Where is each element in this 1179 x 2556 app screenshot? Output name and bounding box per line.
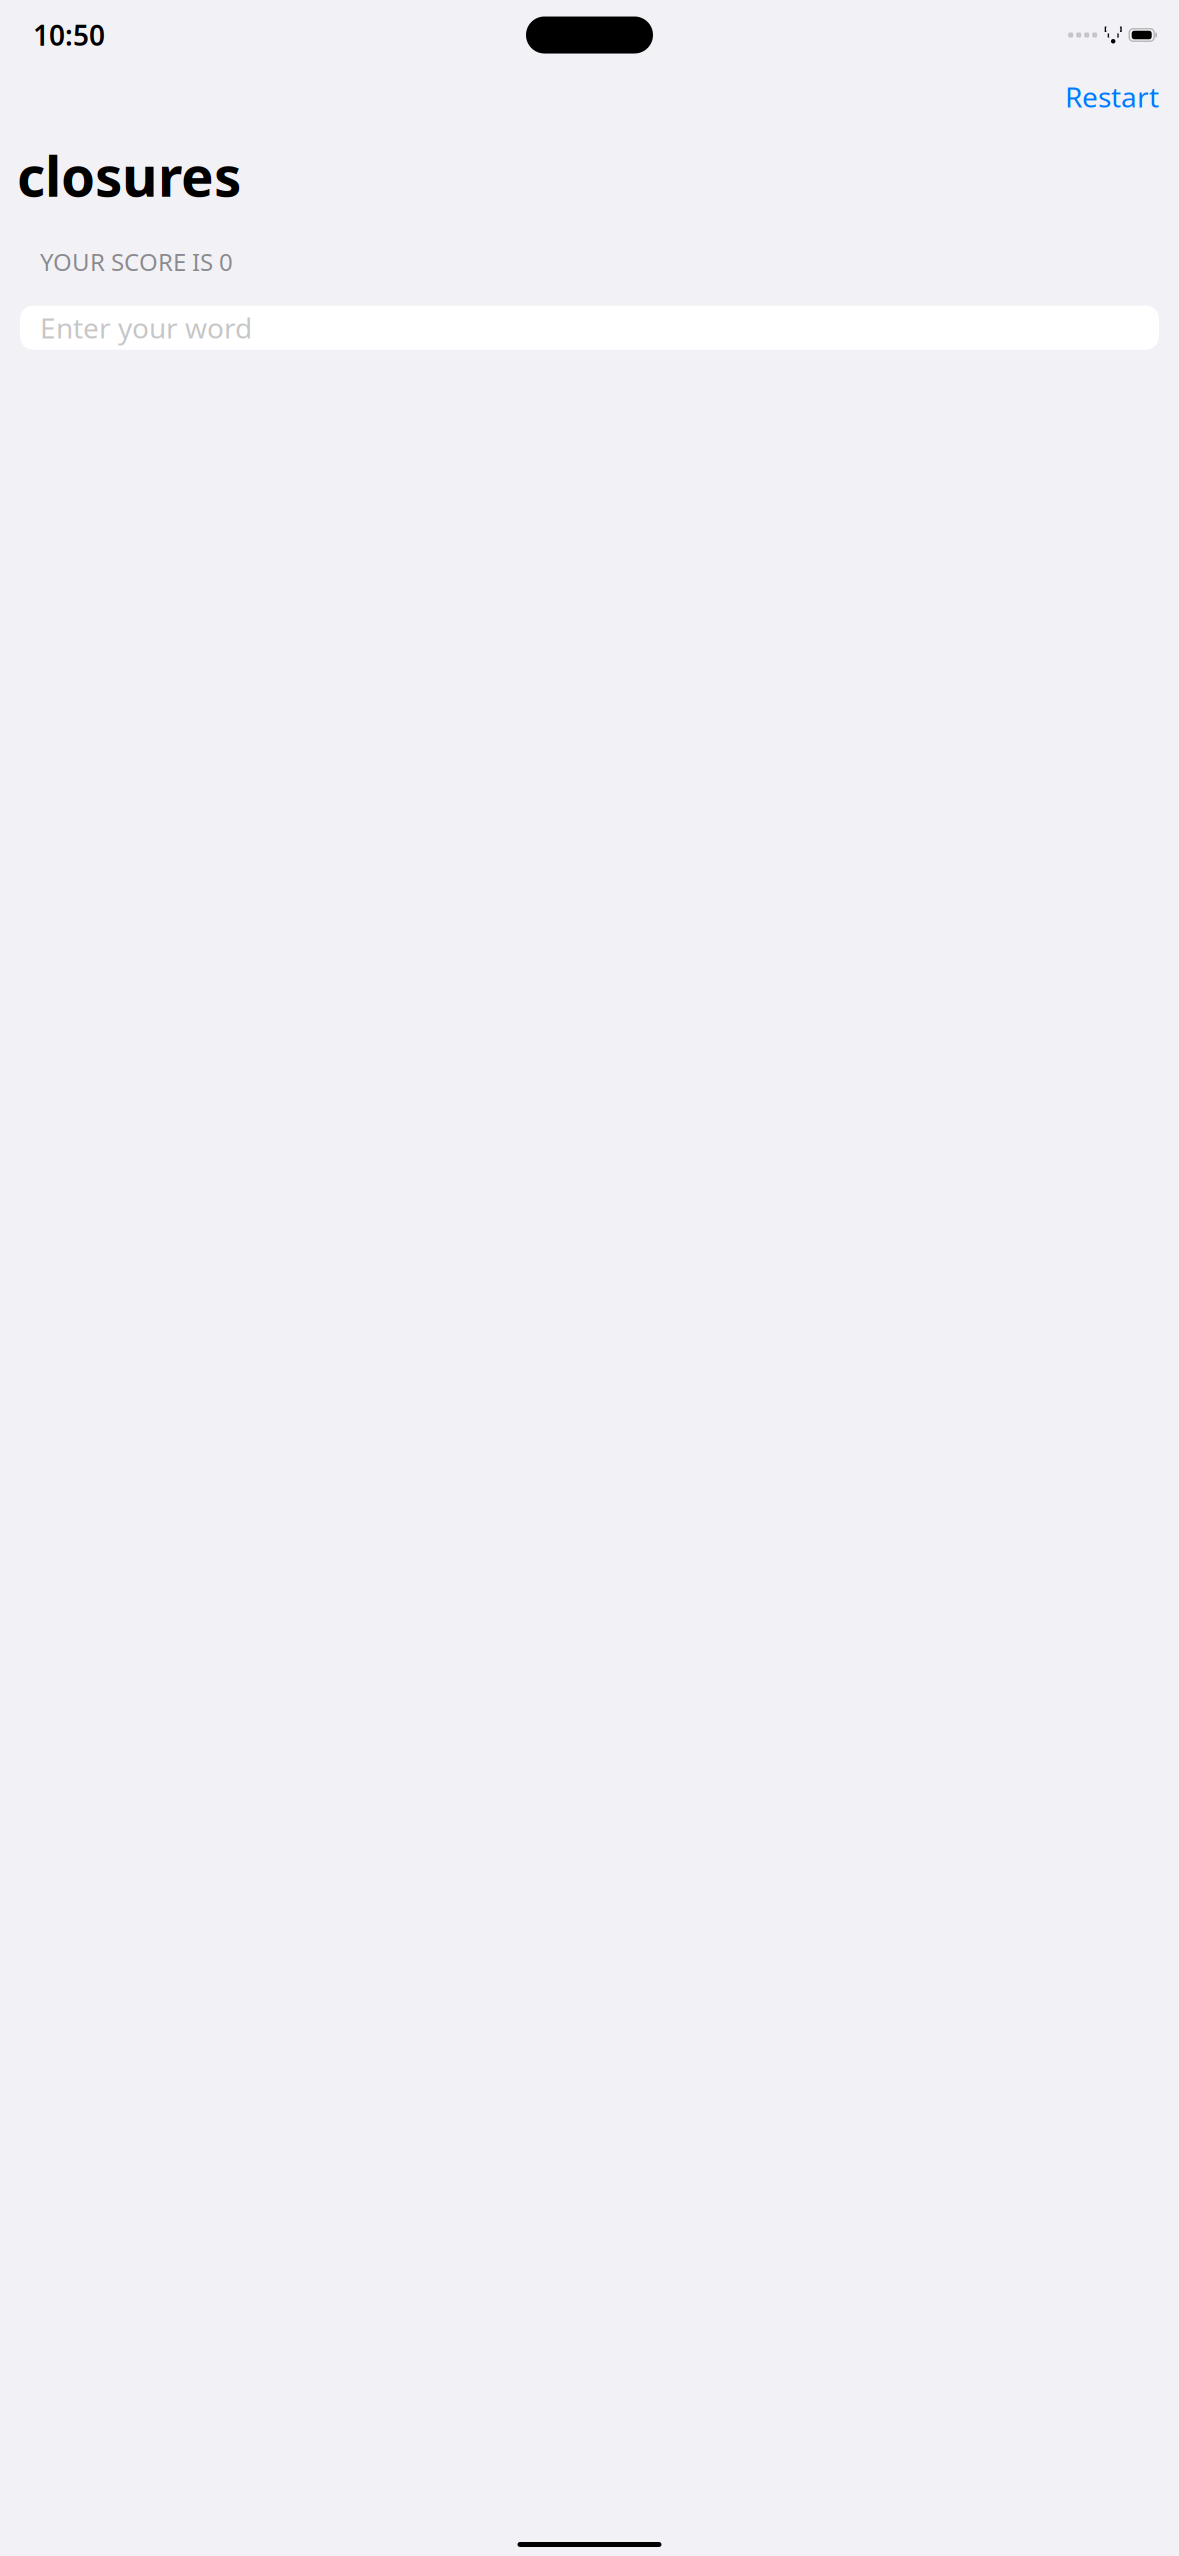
staticText: Restart xyxy=(1065,78,1159,115)
staticText: Enter your word xyxy=(40,309,252,346)
staticText: 10:50 xyxy=(33,16,105,54)
staticText: closures xyxy=(17,139,241,212)
staticText: YOUR SCORE IS 0 xyxy=(40,246,233,278)
button[interactable]: Restart xyxy=(1057,72,1167,121)
button[interactable]: Enter your word xyxy=(20,306,1159,350)
